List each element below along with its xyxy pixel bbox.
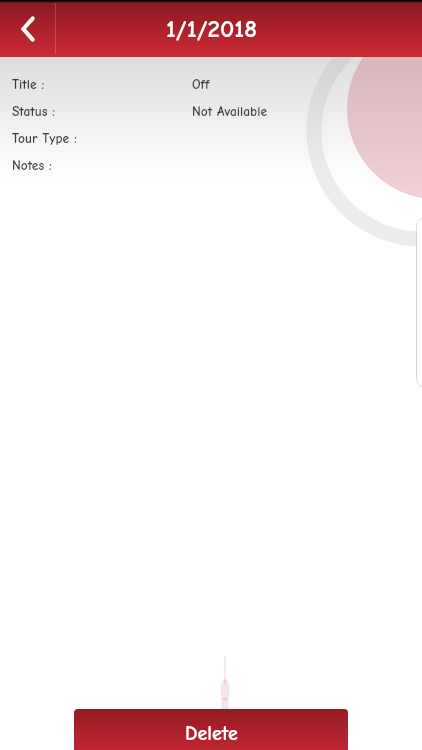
staticText: Not Available — [192, 104, 268, 120]
button[interactable]: Back — [0, 0, 56, 57]
staticText: Status : — [12, 104, 56, 120]
staticText: Title : — [12, 77, 45, 93]
staticText: Delete — [185, 722, 238, 745]
staticText: Tour Type : — [12, 131, 77, 147]
staticText: Notes : — [12, 158, 52, 174]
staticText: 1/1/2018 — [166, 14, 257, 43]
button[interactable]: Delete — [74, 709, 348, 750]
staticText: Off — [192, 77, 210, 93]
